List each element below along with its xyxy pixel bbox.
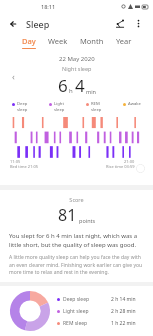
staticText: Week xyxy=(48,36,68,46)
staticText: 18:11 xyxy=(41,3,56,10)
staticText: 6 xyxy=(58,74,68,97)
staticText: You slept for 6 h 4 min last night, whic… xyxy=(9,232,144,249)
staticText: 11:05 xyxy=(10,159,21,164)
staticText: Day xyxy=(22,36,36,46)
staticText: min xyxy=(86,88,96,95)
button[interactable]: Details xyxy=(136,164,145,173)
staticText: Deep sleep xyxy=(63,296,103,303)
button[interactable]: Day xyxy=(16,36,42,49)
staticText: REM xyxy=(91,101,100,107)
staticText: 4 xyxy=(75,74,85,97)
button[interactable]: Month xyxy=(74,36,110,49)
button[interactable]: Share xyxy=(113,16,128,31)
staticText: sleep xyxy=(91,107,102,113)
staticText: Awake xyxy=(128,101,141,107)
staticText: 2 h 14 min xyxy=(111,296,136,303)
staticText: 1 h 22 min xyxy=(111,320,136,327)
staticText: Score xyxy=(9,196,144,203)
button[interactable]: Year xyxy=(110,36,138,49)
staticText: A little more quality sleep can help you… xyxy=(9,254,144,275)
button[interactable]: Week xyxy=(42,36,74,49)
staticText: h xyxy=(69,87,73,95)
staticText: 81 xyxy=(58,204,77,226)
staticText: Bed time 21:05 xyxy=(10,164,39,169)
staticText: points xyxy=(79,217,96,224)
staticText: 2 h 28 min xyxy=(111,308,136,315)
staticText: Month xyxy=(80,36,104,46)
staticText: sleep xyxy=(54,107,65,113)
button[interactable]: ‹ xyxy=(12,70,15,82)
staticText: REM sleep xyxy=(63,320,103,327)
staticText: 22 May 2020 xyxy=(59,55,95,63)
staticText: Rise time 03:59 xyxy=(106,164,135,169)
staticText: 21:00 xyxy=(124,159,135,164)
staticText: Year xyxy=(116,36,132,46)
staticText: Light sleep xyxy=(63,308,103,315)
button[interactable]: More options xyxy=(131,16,146,31)
button[interactable]: Back xyxy=(7,17,21,31)
staticText: Night sleep xyxy=(62,65,92,72)
staticText: sleep xyxy=(17,107,28,113)
staticText: Sleep xyxy=(26,18,50,30)
staticText: Deep xyxy=(17,101,28,107)
staticText: Light xyxy=(54,101,64,107)
